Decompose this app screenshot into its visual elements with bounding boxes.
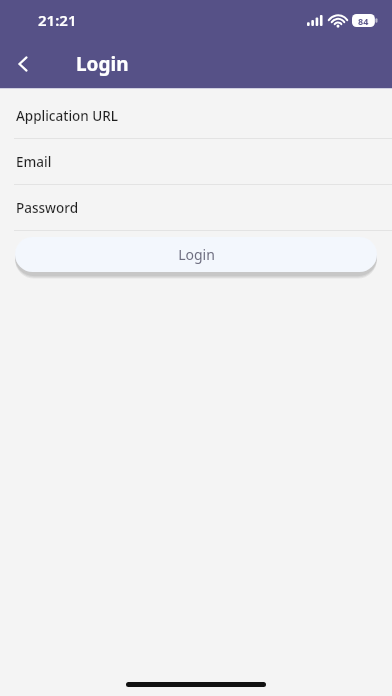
staticText: Login xyxy=(76,51,129,77)
staticText: Email xyxy=(16,153,52,171)
button[interactable]: Back xyxy=(0,41,46,87)
staticText: Application URL xyxy=(16,107,118,125)
button[interactable]: Password xyxy=(0,185,392,231)
staticText: Password xyxy=(16,199,79,217)
staticText: 21:21 xyxy=(38,10,77,30)
button[interactable]: Email xyxy=(0,139,392,185)
staticText: Login xyxy=(178,245,215,264)
staticText: 84 xyxy=(358,15,369,27)
button[interactable]: Login xyxy=(15,237,377,272)
button[interactable]: Application URL xyxy=(0,93,392,139)
